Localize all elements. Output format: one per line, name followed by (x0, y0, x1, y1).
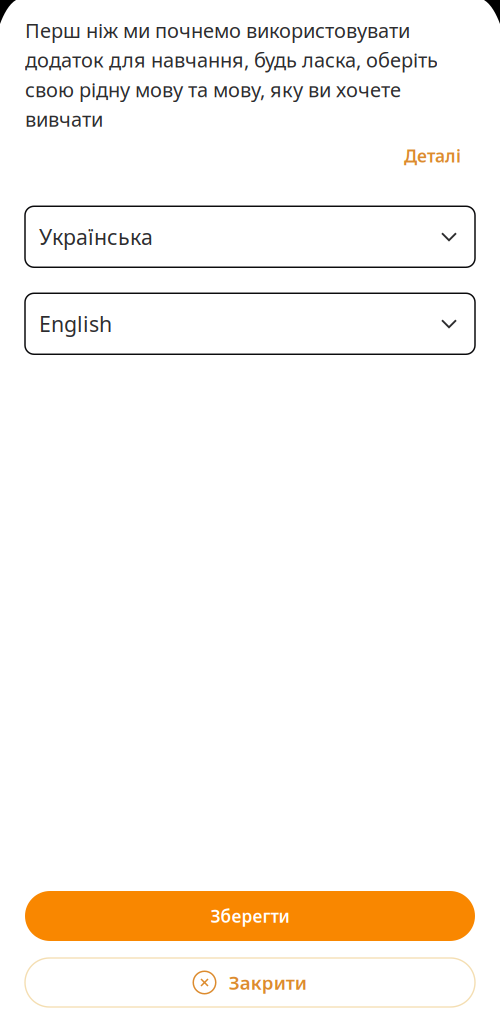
button[interactable]: Зберегти (25, 891, 475, 941)
staticText: Деталі (404, 144, 461, 167)
staticText: Перш ніж ми почнемо використовувати дода… (25, 17, 438, 132)
button[interactable]: Деталі (404, 144, 461, 167)
staticText: Зберегти (210, 904, 289, 927)
staticText: Українська (39, 223, 153, 251)
staticText: Закрити (229, 970, 307, 995)
button[interactable]: Закрити (25, 958, 475, 1007)
button[interactable]: English (25, 293, 475, 354)
staticText: English (39, 310, 112, 338)
button[interactable]: Українська (25, 206, 475, 267)
